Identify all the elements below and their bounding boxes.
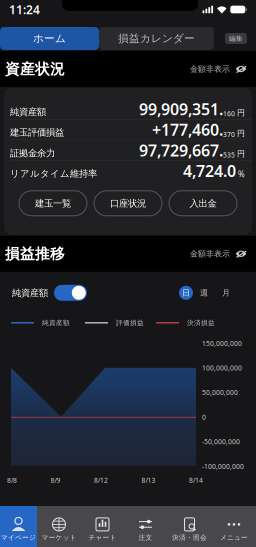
- staticText: 8/13: [141, 476, 155, 485]
- staticText: +177,460.: [152, 119, 223, 140]
- staticText: 証拠金余力: [10, 147, 55, 159]
- button[interactable]: ホーム: [0, 27, 99, 50]
- staticText: マイページ: [1, 533, 36, 542]
- staticText: 0: [202, 413, 206, 422]
- button[interactable]: 入出金: [169, 191, 237, 216]
- staticText: 損益推移: [5, 245, 65, 263]
- button[interactable]: 決済・照会: [167, 506, 212, 547]
- button[interactable]: 週: [193, 286, 215, 300]
- staticText: 4,724.0: [183, 160, 236, 181]
- button[interactable]: 編集: [225, 33, 247, 44]
- staticText: 注文: [138, 533, 152, 542]
- staticText: 口座状況: [110, 198, 146, 209]
- staticText: 建玉一覧: [35, 198, 71, 209]
- staticText: 8/8: [7, 476, 17, 485]
- staticText: 入出金: [189, 198, 216, 209]
- button[interactable]: 口座状況: [94, 191, 162, 216]
- staticText: -100,000,000: [202, 462, 244, 471]
- staticText: 円: [237, 108, 245, 118]
- staticText: 評価損益: [116, 319, 144, 327]
- button[interactable]: マイページ: [0, 506, 37, 547]
- staticText: 150,000,000: [202, 339, 242, 348]
- staticText: 535: [223, 150, 235, 159]
- button[interactable]: メニュー: [212, 506, 256, 547]
- staticText: 資産状況: [5, 60, 65, 78]
- button[interactable]: 損益カレンダー: [99, 27, 214, 50]
- staticText: リアルタイム維持率: [10, 168, 97, 179]
- staticText: 97,729,667.: [139, 140, 223, 161]
- staticText: 純資産額: [42, 319, 70, 327]
- button[interactable]: 純資産額 表示切替: [54, 285, 87, 301]
- staticText: -50,000,000: [202, 437, 240, 446]
- staticText: 損益カレンダー: [118, 32, 195, 45]
- staticText: 11:24: [9, 1, 40, 17]
- button[interactable]: 月: [215, 286, 237, 300]
- staticText: 決済損益: [187, 319, 215, 327]
- staticText: 99,909,351.: [139, 98, 223, 120]
- staticText: メニュー: [220, 533, 248, 542]
- staticText: チャート: [88, 533, 116, 542]
- staticText: 8/14: [189, 476, 203, 485]
- button[interactable]: チャート: [81, 506, 124, 547]
- button[interactable]: 金額非表示: [190, 64, 247, 74]
- staticText: 370: [223, 130, 235, 139]
- staticText: 円: [237, 149, 245, 159]
- staticText: 160: [223, 109, 235, 118]
- staticText: 金額非表示: [190, 249, 230, 259]
- staticText: 純資産額: [12, 287, 48, 299]
- staticText: マーケット: [41, 533, 76, 542]
- staticText: 日: [182, 288, 190, 298]
- staticText: 金額非表示: [190, 64, 230, 74]
- staticText: 8/9: [50, 476, 60, 485]
- staticText: %: [238, 169, 245, 179]
- staticText: 円: [237, 128, 245, 138]
- staticText: 決済・照会: [172, 533, 207, 542]
- staticText: 50,000,000: [202, 388, 238, 397]
- button[interactable]: 注文: [124, 506, 167, 547]
- staticText: 月: [222, 288, 230, 298]
- staticText: 週: [200, 288, 208, 298]
- staticText: ホーム: [33, 32, 66, 45]
- staticText: 建玉評価損益: [10, 127, 64, 138]
- staticText: 純資産額: [10, 106, 46, 118]
- staticText: 8/12: [94, 476, 108, 485]
- staticText: 100,000,000: [202, 363, 242, 372]
- button[interactable]: 日: [179, 286, 193, 300]
- button[interactable]: 金額非表示: [190, 249, 247, 259]
- button[interactable]: 建玉一覧: [19, 191, 87, 216]
- button[interactable]: マーケット: [37, 506, 81, 547]
- staticText: 編集: [229, 34, 243, 43]
